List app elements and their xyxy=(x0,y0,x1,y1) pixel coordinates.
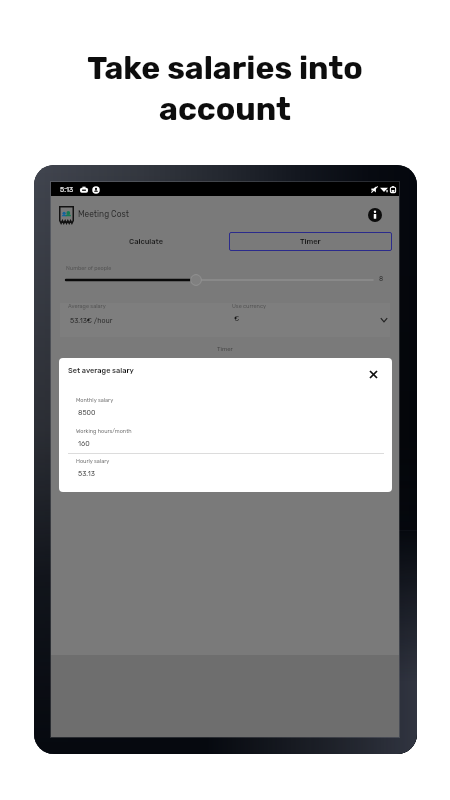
staticText: Timer xyxy=(300,237,321,246)
staticText: Number of people xyxy=(66,265,112,272)
staticText: Calculate xyxy=(129,237,164,246)
button[interactable]: Calculate xyxy=(60,232,232,251)
button[interactable]: Working hours/month xyxy=(76,428,366,447)
button[interactable]: Use currency xyxy=(232,303,390,337)
staticText: Meeting Cost xyxy=(78,209,129,219)
button[interactable]: Average salary xyxy=(68,303,218,324)
staticText: Use currency xyxy=(232,303,266,310)
staticText: € xyxy=(234,314,240,322)
staticText: Take salaries into account xyxy=(87,49,363,128)
staticText: 160 xyxy=(78,439,90,447)
staticText: Working hours/month xyxy=(76,428,132,435)
button[interactable]: Hourly salary xyxy=(76,458,366,477)
staticText: Set average salary xyxy=(68,366,134,375)
staticText: 8500 xyxy=(78,408,96,416)
staticText: 8 xyxy=(379,275,384,283)
button[interactable]: Monthly salary xyxy=(76,397,366,416)
staticText: Timer xyxy=(217,345,233,352)
button[interactable]: Info xyxy=(366,206,384,224)
button[interactable]: Close xyxy=(365,366,382,383)
staticText: 5:13 xyxy=(60,185,74,193)
button[interactable]: Timer xyxy=(229,232,392,251)
staticText: 53.13€ /hour xyxy=(70,316,113,324)
staticText: Monthly salary xyxy=(76,397,114,404)
staticText: Average salary xyxy=(68,303,106,310)
staticText: 53.13 xyxy=(78,469,95,477)
staticText: Hourly salary xyxy=(76,458,110,465)
